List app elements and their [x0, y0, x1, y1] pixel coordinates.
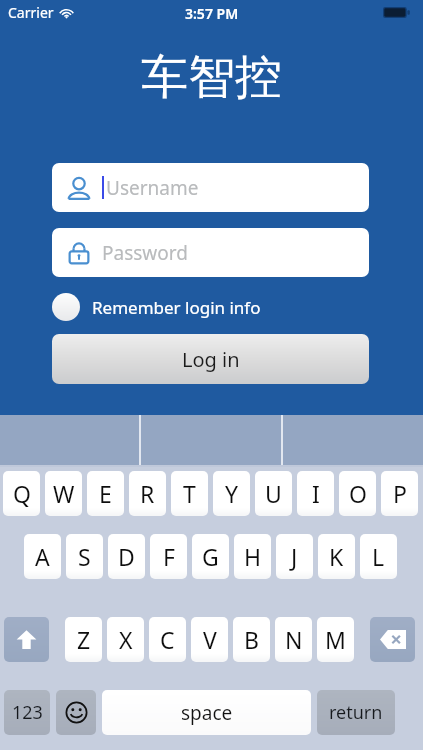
button[interactable]: U	[255, 471, 292, 516]
staticText: R	[140, 478, 155, 509]
staticText: B	[244, 624, 259, 655]
staticText: V	[203, 624, 217, 655]
staticText: E	[99, 478, 112, 509]
staticText: G	[202, 541, 219, 572]
button[interactable]: C	[149, 617, 186, 662]
button[interactable]	[141, 415, 281, 467]
button[interactable]: P	[381, 471, 418, 516]
button[interactable]: Z	[65, 617, 102, 662]
staticText: Q	[13, 478, 31, 509]
staticText: M	[325, 624, 346, 655]
staticText: Password	[102, 240, 188, 266]
button[interactable]	[0, 415, 139, 467]
button[interactable]: H	[234, 534, 271, 579]
staticText: Username	[106, 175, 199, 201]
button[interactable]: Username	[52, 163, 369, 212]
button[interactable]	[283, 415, 423, 467]
staticText: F	[163, 541, 175, 572]
staticText: I	[312, 478, 320, 509]
button[interactable]: D	[108, 534, 145, 579]
staticText: C	[160, 624, 175, 655]
button[interactable]: T	[171, 471, 208, 516]
staticText: N	[285, 624, 303, 655]
button[interactable]: F	[150, 534, 187, 579]
button[interactable]: W	[45, 471, 82, 516]
staticText: P	[393, 478, 407, 509]
staticText: O	[349, 478, 367, 509]
staticText: Z	[77, 624, 91, 655]
button[interactable]: Remember login info	[52, 292, 261, 322]
button[interactable]: M	[317, 617, 354, 662]
button[interactable]: Backspace	[370, 617, 415, 662]
button[interactable]: R	[129, 471, 166, 516]
staticText: A	[35, 541, 50, 572]
staticText: X	[119, 624, 133, 655]
staticText: J	[291, 541, 298, 572]
button[interactable]: return	[317, 690, 395, 735]
button[interactable]: K	[318, 534, 355, 579]
button[interactable]: Emoji	[56, 690, 96, 735]
staticText: return	[329, 700, 383, 725]
button[interactable]: A	[24, 534, 61, 579]
button[interactable]: Shift	[4, 617, 49, 662]
button[interactable]: S	[66, 534, 103, 579]
staticText: S	[78, 541, 91, 572]
staticText: 车智控	[141, 48, 282, 107]
button[interactable]: X	[107, 617, 144, 662]
button[interactable]: Q	[3, 471, 40, 516]
staticText: T	[183, 478, 196, 509]
staticText: W	[53, 478, 75, 509]
staticText: Remember login info	[92, 296, 261, 319]
button[interactable]: space	[102, 690, 311, 735]
button[interactable]: Log in	[52, 334, 369, 384]
staticText: D	[118, 541, 135, 572]
button[interactable]: N	[275, 617, 312, 662]
button[interactable]: Y	[213, 471, 250, 516]
button[interactable]: Password	[52, 228, 369, 277]
staticText: Carrier	[8, 3, 54, 22]
button[interactable]: B	[233, 617, 270, 662]
staticText: 3:57 PM	[185, 4, 239, 23]
button[interactable]: E	[87, 471, 124, 516]
staticText: space	[181, 700, 233, 726]
button[interactable]: G	[192, 534, 229, 579]
staticText: 123	[12, 700, 43, 725]
button[interactable]: V	[191, 617, 228, 662]
staticText: Y	[225, 478, 239, 509]
button[interactable]: O	[339, 471, 376, 516]
staticText: K	[329, 541, 344, 572]
staticText: Log in	[182, 346, 240, 373]
button[interactable]: I	[297, 471, 334, 516]
staticText: U	[265, 478, 282, 509]
button[interactable]: J	[276, 534, 313, 579]
button[interactable]: L	[360, 534, 397, 579]
staticText: H	[244, 541, 262, 572]
staticText: L	[372, 541, 385, 572]
button[interactable]: 123	[4, 690, 50, 735]
